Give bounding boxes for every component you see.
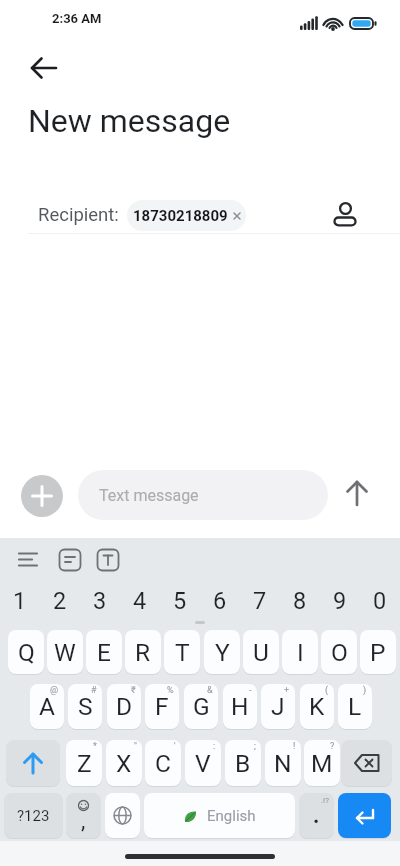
staticText: ) (363, 685, 367, 696)
button[interactable] (22, 50, 62, 86)
button[interactable]: R (125, 630, 161, 674)
staticText: ! (293, 741, 296, 752)
staticText: Z (77, 749, 92, 778)
staticText: H (231, 692, 249, 721)
button[interactable]: I (282, 630, 318, 674)
button[interactable]: F (145, 684, 179, 729)
button[interactable]: H (223, 684, 257, 729)
staticText: . (313, 803, 320, 829)
button[interactable]: N (265, 740, 301, 786)
button[interactable] (338, 793, 391, 838)
button[interactable]: 4 (123, 586, 157, 616)
button[interactable] (105, 793, 140, 838)
staticText: .!? (321, 796, 329, 805)
button[interactable] (340, 476, 374, 514)
button[interactable]: B (225, 740, 261, 786)
button[interactable]: V (185, 740, 221, 786)
staticText: O (331, 638, 348, 667)
button[interactable] (55, 544, 85, 576)
staticText: Q (18, 638, 35, 667)
staticText: 18730218809 (133, 207, 228, 225)
staticText: Recipient: (38, 204, 119, 226)
button[interactable] (93, 544, 123, 576)
button[interactable]: L (338, 684, 372, 729)
button[interactable]: Y (204, 630, 240, 674)
button[interactable]: J (261, 684, 295, 729)
button[interactable]: 2 (43, 586, 77, 616)
button[interactable]: T (164, 630, 200, 674)
staticText: % (167, 685, 174, 696)
staticText: @ (50, 685, 59, 696)
button[interactable]: P (360, 630, 396, 674)
button[interactable]: E (86, 630, 122, 674)
staticText: F (155, 692, 169, 721)
staticText: English (207, 807, 256, 825)
button[interactable] (328, 192, 362, 232)
staticText: 6 (213, 587, 227, 615)
button[interactable]: C (145, 740, 181, 786)
staticText: " (134, 741, 137, 752)
button[interactable]: D (107, 684, 141, 729)
button[interactable]: K (300, 684, 334, 729)
staticText: 8 (293, 587, 307, 615)
button[interactable]: 7 (243, 586, 277, 616)
button[interactable]: .!? (299, 793, 334, 838)
button[interactable]: , (66, 793, 101, 838)
button[interactable]: 8 (283, 586, 317, 616)
staticText: , (81, 808, 86, 834)
staticText: L (348, 692, 362, 721)
staticText: + (284, 685, 290, 696)
button[interactable]: ?123 (4, 793, 63, 838)
button[interactable]: G (184, 684, 218, 729)
staticText: G (193, 692, 210, 721)
button[interactable]: Text message (78, 470, 328, 520)
staticText: E (97, 638, 111, 667)
staticText: * (93, 741, 97, 752)
staticText: S (78, 692, 93, 721)
button[interactable]: 18730218809 (127, 200, 246, 231)
staticText: P (370, 638, 386, 667)
staticText: ; (254, 741, 256, 752)
staticText: 2:36 AM (52, 11, 102, 26)
staticText: 9 (333, 587, 347, 615)
staticText: B (235, 749, 251, 778)
staticText: 5 (173, 587, 187, 615)
staticText: C (155, 749, 171, 778)
staticText: ₹ (131, 685, 136, 696)
button[interactable]: 9 (323, 586, 357, 616)
button[interactable]: W (47, 630, 83, 674)
staticText: A (39, 692, 55, 721)
staticText: 7 (253, 587, 267, 615)
staticText: 2 (53, 587, 67, 615)
staticText: X (116, 749, 132, 778)
button[interactable]: 6 (203, 586, 237, 616)
staticText: ( (325, 685, 329, 696)
button[interactable] (341, 740, 392, 786)
button[interactable]: 1 (3, 586, 37, 616)
button[interactable]: O (321, 630, 357, 674)
staticText: K (309, 692, 325, 721)
button[interactable]: 0 (363, 586, 397, 616)
button[interactable]: A (30, 684, 64, 729)
staticText: ? (330, 741, 335, 752)
button[interactable] (12, 544, 46, 576)
button[interactable]: Q (8, 630, 44, 674)
staticText: New message (28, 102, 231, 140)
button[interactable]: Z (66, 740, 102, 786)
button[interactable]: English (144, 793, 295, 838)
staticText: - (249, 685, 252, 696)
button[interactable]: S (68, 684, 102, 729)
button[interactable]: 5 (163, 586, 197, 616)
staticText: 1 (13, 587, 27, 615)
button[interactable]: M (304, 740, 340, 786)
staticText: R (135, 638, 151, 667)
button[interactable] (6, 740, 60, 786)
button[interactable]: X (106, 740, 142, 786)
staticText: Text message (99, 486, 199, 505)
staticText: U (253, 638, 269, 667)
button[interactable]: U (243, 630, 279, 674)
staticText: : (213, 741, 216, 752)
button[interactable] (21, 475, 63, 517)
staticText: T (175, 638, 190, 667)
button[interactable]: 3 (83, 586, 117, 616)
